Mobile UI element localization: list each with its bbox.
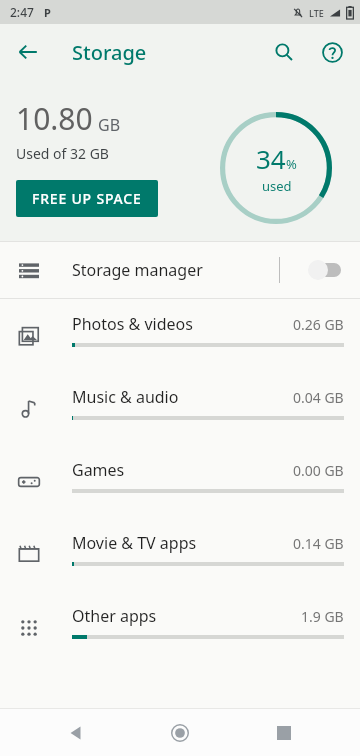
staticText: 10.80 [16,98,93,139]
staticText: Photos & videos [72,313,193,335]
button[interactable]: FREE UP SPACE [16,180,158,217]
button[interactable]: Back [48,709,104,756]
staticText: % [286,155,297,173]
staticText: Music & audio [72,386,179,408]
staticText: 34 [256,141,286,176]
button[interactable]: Help [308,28,356,76]
button[interactable]: Other apps [0,591,360,664]
staticText: Storage [72,39,147,66]
staticText: FREE UP SPACE [32,189,142,208]
staticText: P [44,5,51,20]
staticText: used [262,177,292,195]
button[interactable]: Search [260,28,308,76]
staticText: LTE [309,7,324,19]
button[interactable]: Movie & TV apps [0,518,360,591]
button[interactable]: Games [0,445,360,518]
button[interactable]: Recent apps [256,709,312,756]
staticText: 0.26 GB [293,315,344,334]
staticText: Used of 32 GB [16,144,109,163]
staticText: GB [98,114,121,136]
button[interactable]: Storage manager [0,242,360,298]
staticText: Games [72,459,125,481]
staticText: 1.9 GB [301,607,344,626]
button[interactable]: Storage manager toggle [298,252,346,288]
staticText: 0.04 GB [293,388,344,407]
staticText: Movie & TV apps [72,532,197,554]
button[interactable]: Photos & videos [0,299,360,372]
button[interactable]: Back [4,28,52,76]
staticText: 0.00 GB [293,461,344,480]
staticText: Storage manager [72,259,203,281]
button[interactable]: Music & audio [0,372,360,445]
staticText: 0.14 GB [293,534,344,553]
staticText: 2:47 [10,4,34,20]
button[interactable]: Home [152,709,208,756]
staticText: Other apps [72,605,157,627]
